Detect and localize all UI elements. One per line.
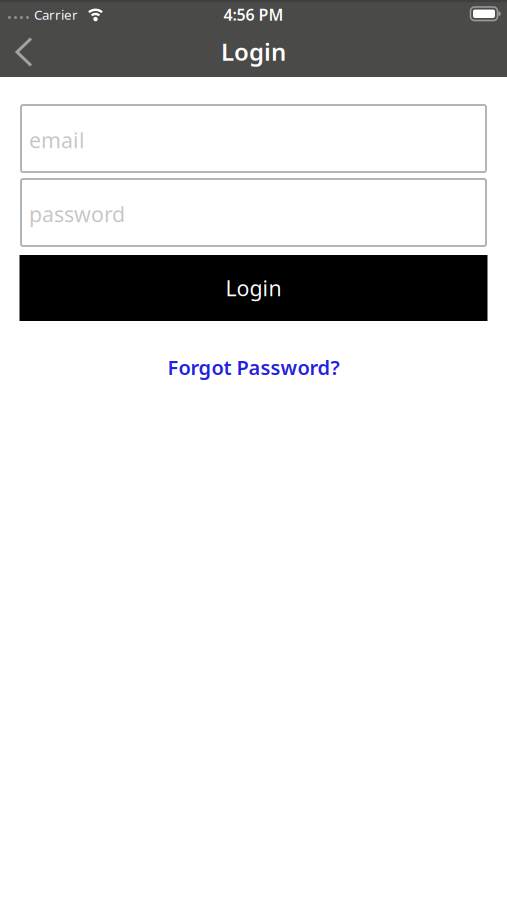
button[interactable]: Forgot Password? bbox=[167, 354, 339, 381]
button[interactable]: Login bbox=[19, 255, 487, 321]
staticText: 4:56 PM bbox=[223, 4, 283, 25]
staticText: password bbox=[29, 200, 125, 228]
button[interactable]: email bbox=[21, 105, 486, 172]
staticText: Carrier bbox=[34, 6, 78, 23]
staticText: email bbox=[29, 126, 85, 154]
button[interactable]: Back bbox=[0, 29, 48, 75]
staticText: Forgot Password? bbox=[167, 354, 339, 381]
staticText: Login bbox=[221, 36, 286, 67]
button[interactable]: password bbox=[21, 179, 486, 246]
staticText: Login bbox=[225, 274, 281, 302]
